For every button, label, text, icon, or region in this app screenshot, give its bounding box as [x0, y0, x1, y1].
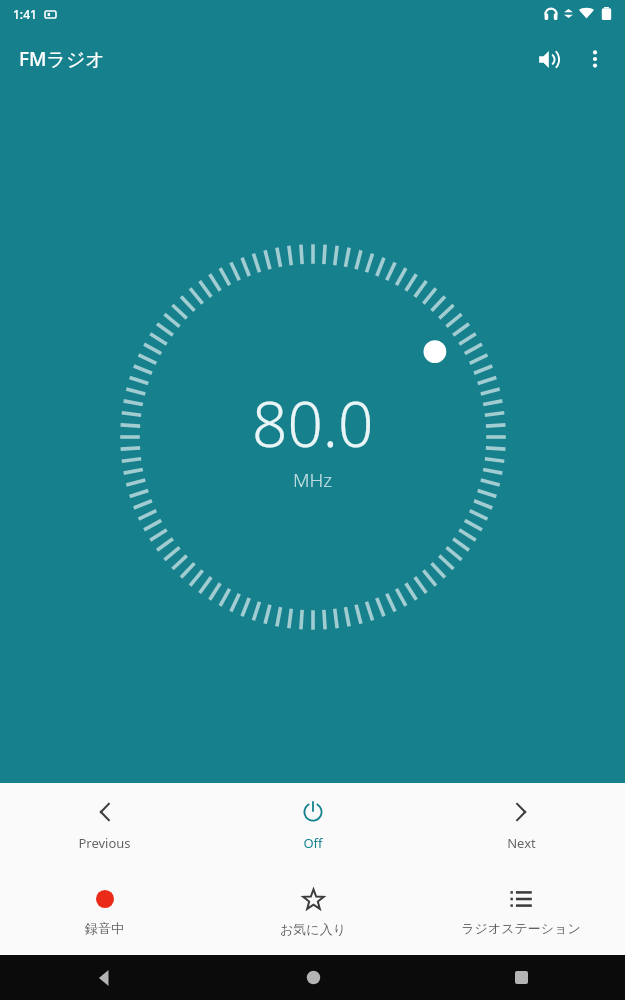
button[interactable]: Back — [0, 955, 209, 1000]
staticText: Off — [303, 834, 323, 852]
staticText: MHz — [293, 467, 333, 493]
button[interactable]: Off — [209, 783, 417, 869]
staticText: 録音中 — [85, 920, 124, 936]
button[interactable]: Home — [209, 955, 417, 1000]
button[interactable]: More options — [573, 37, 617, 81]
staticText: FMラジオ — [19, 46, 105, 72]
staticText: 80.0 — [252, 381, 374, 465]
button[interactable]: 録音中 — [0, 869, 209, 955]
button[interactable]: お気に入り — [209, 869, 417, 955]
button[interactable]: Volume — [525, 35, 573, 83]
button[interactable]: Next — [417, 783, 625, 869]
button[interactable]: Previous — [0, 783, 209, 869]
staticText: 1:41 — [13, 6, 37, 22]
staticText: ラジオステーション — [461, 920, 581, 936]
staticText: Next — [507, 834, 536, 852]
button[interactable]: Recent apps — [417, 955, 625, 1000]
staticText: お気に入り — [280, 921, 346, 937]
button[interactable]: ラジオステーション — [417, 869, 625, 955]
staticText: Previous — [78, 834, 131, 852]
